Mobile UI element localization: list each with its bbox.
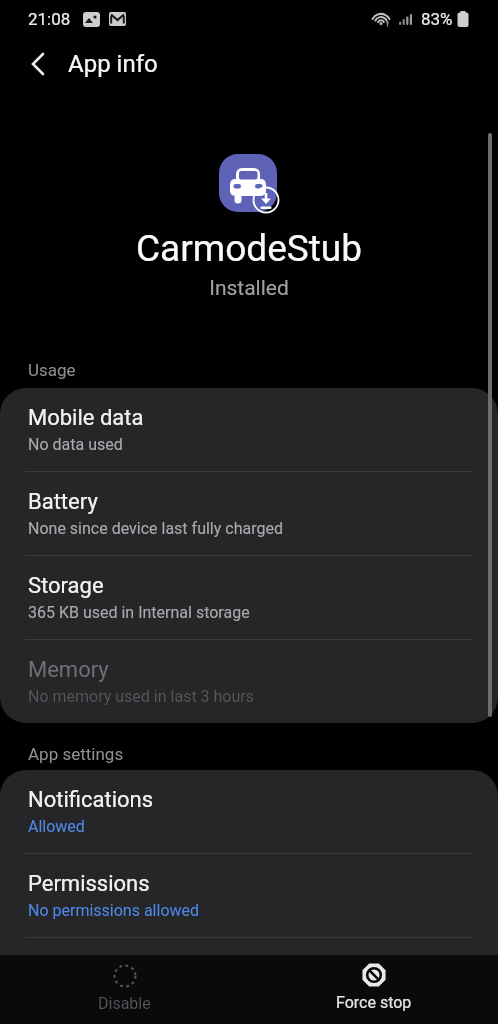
button[interactable]: Disable [0,955,249,1024]
staticText: CarmodeStub [0,227,498,270]
staticText: 21:08 [28,9,71,29]
staticText: Storage [28,573,104,599]
button[interactable]: Notifications [0,770,498,853]
staticText: Installed [0,276,498,301]
staticText: None since device last fully charged [28,519,283,538]
staticText: No memory used in last 3 hours [28,687,254,706]
button[interactable]: Mobile data [0,388,498,471]
staticText: Disable [98,994,151,1013]
button[interactable] [20,46,56,82]
staticText: Allowed [28,817,85,836]
staticText: App settings [28,744,124,764]
button[interactable]: Battery [0,472,498,555]
button[interactable]: Force stop [249,955,498,1024]
staticText: Battery [28,489,98,515]
button[interactable]: Memory [0,640,498,723]
staticText: Notifications [28,787,154,813]
staticText: No data used [28,435,123,454]
staticText: Force stop [336,993,412,1012]
button[interactable]: Permissions [0,854,498,937]
button[interactable]: Storage [0,556,498,639]
staticText: 83% [421,9,453,29]
staticText: Memory [28,657,109,683]
staticText: Usage [28,360,76,380]
staticText: App info [68,50,158,78]
staticText: No permissions allowed [28,901,200,920]
staticText: 365 KB used in Internal storage [28,603,250,622]
staticText: Permissions [28,871,150,897]
staticText: Mobile data [28,405,144,431]
